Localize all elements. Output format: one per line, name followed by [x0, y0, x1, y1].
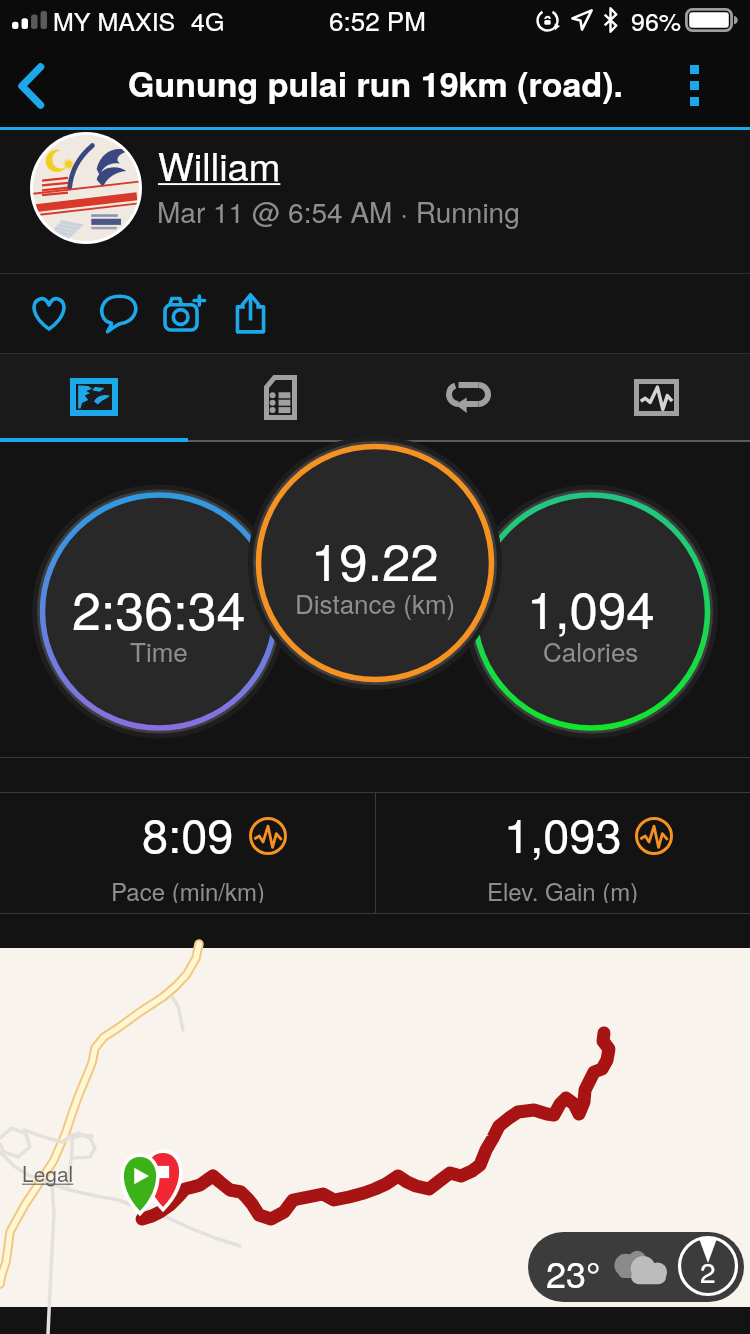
button[interactable]: More options: [663, 44, 725, 127]
staticText: Elev. Gain (m): [487, 873, 639, 903]
button[interactable]: 1,093: [375, 793, 750, 913]
staticText: 19.22: [311, 522, 439, 590]
staticText: William: [158, 137, 281, 191]
staticText: Mar 11 @ 6:54 AM · Running: [157, 191, 520, 231]
staticText: 2: [700, 1251, 716, 1291]
staticText: Distance (km): [295, 584, 456, 621]
staticText: 23°: [546, 1247, 601, 1299]
staticText: 96%: [631, 2, 682, 38]
button[interactable]: Compass: [677, 1235, 739, 1297]
staticText: Calories: [543, 632, 639, 669]
button[interactable]: Comment: [85, 274, 151, 353]
button[interactable]: Share: [217, 274, 283, 353]
staticText: Pace (min/km): [111, 873, 265, 903]
staticText: 8:09: [142, 799, 234, 861]
button[interactable]: Add photo: [151, 274, 217, 353]
staticText: 6:52 PM: [329, 1, 426, 38]
staticText: Time: [130, 632, 188, 669]
button[interactable]: Map: [0, 354, 187, 442]
button[interactable]: Analysis: [562, 354, 750, 442]
staticText: Legal: [22, 1158, 74, 1188]
staticText: 1,094: [527, 570, 655, 638]
button[interactable]: Weather 23 degrees: [528, 1232, 744, 1302]
button[interactable]: Back: [0, 44, 62, 127]
button[interactable]: 8:09: [0, 793, 375, 913]
staticText: MY MAXIS: [53, 2, 176, 38]
button[interactable]: Laps: [374, 354, 562, 442]
button[interactable]: Splits: [187, 354, 374, 442]
staticText: Gunung pulai run 19km (road).: [128, 59, 623, 108]
staticText: 2:36:34: [72, 570, 246, 638]
button[interactable]: William: [0, 130, 750, 273]
staticText: 1,093: [504, 799, 622, 861]
staticText: 4G: [191, 2, 225, 38]
button[interactable]: Like: [16, 274, 82, 353]
